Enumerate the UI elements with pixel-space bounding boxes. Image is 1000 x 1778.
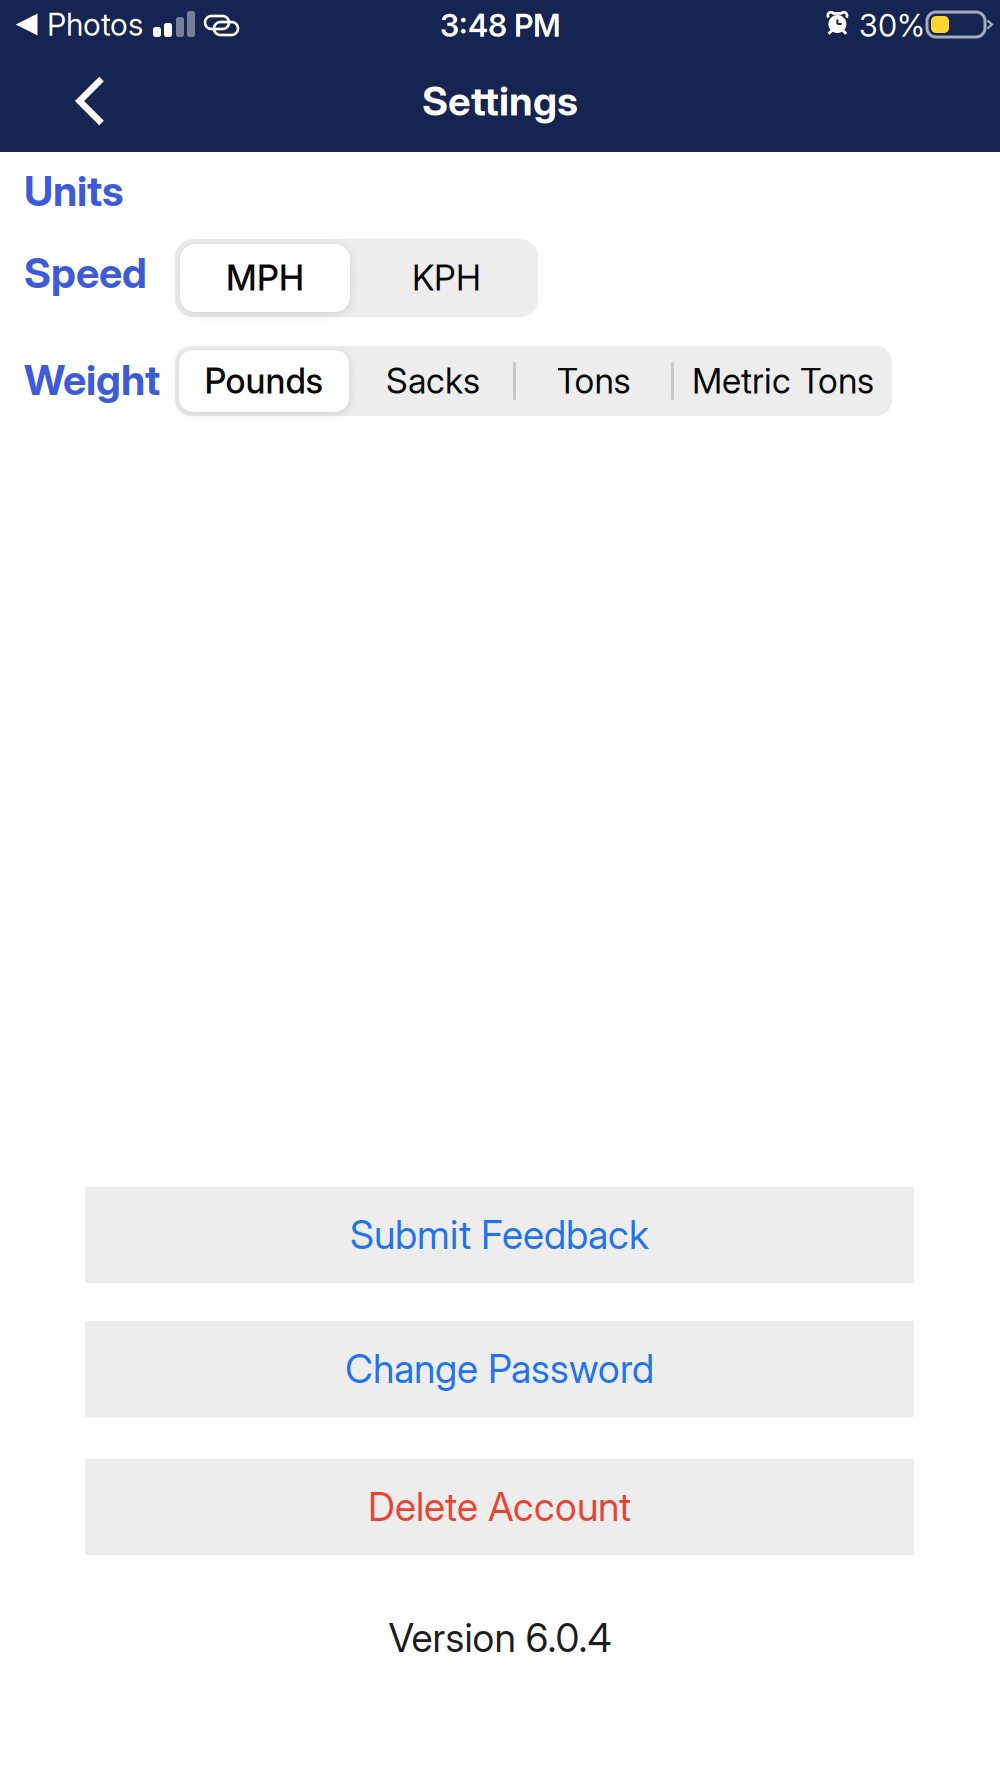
staticText: Units	[24, 166, 124, 216]
staticText: MPH	[226, 257, 304, 299]
staticText: Speed	[24, 248, 147, 298]
staticText: Delete Account	[368, 1484, 631, 1530]
staticText: Submit Feedback	[350, 1212, 649, 1258]
staticText: Weight	[24, 355, 160, 405]
button[interactable]: Back	[46, 57, 136, 145]
button[interactable]: Sacks	[353, 346, 513, 416]
button[interactable]: Submit Feedback	[85, 1187, 914, 1283]
staticText: Sacks	[386, 360, 480, 402]
staticText: Settings	[422, 77, 578, 125]
staticText: Change Password	[345, 1346, 654, 1392]
button[interactable]: Pounds	[175, 346, 353, 416]
staticText: Metric Tons	[692, 360, 874, 402]
staticText: Version 6.0.4	[388, 1615, 611, 1661]
staticText: Pounds	[204, 360, 323, 402]
staticText: KPH	[412, 257, 481, 299]
staticText: Photos	[47, 6, 143, 43]
button[interactable]: Metric Tons	[674, 346, 892, 416]
staticText: Tons	[556, 360, 630, 402]
button[interactable]: Tons	[516, 346, 671, 416]
button[interactable]: KPH	[355, 239, 538, 317]
button[interactable]: MPH	[175, 239, 355, 317]
button[interactable]: Change Password	[85, 1321, 914, 1417]
staticText: 30%	[859, 7, 925, 44]
staticText: 3:48 PM	[440, 7, 561, 44]
button[interactable]: Delete Account	[85, 1459, 914, 1555]
